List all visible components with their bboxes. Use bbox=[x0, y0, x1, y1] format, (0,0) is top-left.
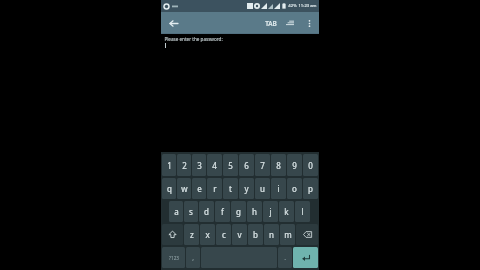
staticText: u bbox=[260, 183, 265, 194]
button[interactable]: j bbox=[263, 201, 278, 222]
button[interactable]: o bbox=[287, 178, 302, 199]
staticText: y bbox=[244, 183, 249, 194]
staticText: f bbox=[221, 206, 224, 217]
staticText: n bbox=[269, 229, 274, 240]
button[interactable]: 0 bbox=[303, 154, 318, 176]
button[interactable]: Back bbox=[165, 15, 181, 31]
staticText: , bbox=[192, 253, 194, 262]
button[interactable]: 8 bbox=[271, 154, 286, 176]
staticText: 11:23 am bbox=[298, 3, 317, 9]
staticText: x bbox=[205, 229, 210, 240]
staticText: a bbox=[174, 206, 179, 217]
button[interactable]: v bbox=[232, 224, 247, 245]
staticText: c bbox=[222, 229, 226, 240]
staticText: 42% bbox=[288, 3, 297, 9]
button[interactable]: Backspace bbox=[296, 224, 318, 245]
staticText: k bbox=[284, 206, 289, 217]
button[interactable]: k bbox=[279, 201, 294, 222]
button[interactable]: b bbox=[248, 224, 263, 245]
staticText: 6 bbox=[244, 160, 249, 171]
button[interactable]: More options bbox=[302, 16, 316, 30]
staticText: w bbox=[181, 183, 188, 194]
staticText: 3 bbox=[197, 160, 202, 171]
button[interactable]: q bbox=[162, 178, 176, 199]
button[interactable]: 6 bbox=[239, 154, 254, 176]
button[interactable]: 9 bbox=[287, 154, 302, 176]
button[interactable]: d bbox=[199, 201, 214, 222]
staticText: s bbox=[189, 206, 193, 217]
staticText: 1 bbox=[167, 160, 172, 171]
staticText: ?123 bbox=[169, 255, 179, 261]
button[interactable]: ?123 bbox=[162, 247, 185, 268]
staticText: q bbox=[167, 183, 172, 194]
staticText: g bbox=[236, 206, 241, 217]
button[interactable]: e bbox=[192, 178, 206, 199]
staticText: 5 bbox=[228, 160, 233, 171]
staticText: 8 bbox=[276, 160, 281, 171]
staticText: m bbox=[284, 229, 292, 240]
button[interactable]: TAB bbox=[264, 19, 278, 28]
button[interactable]: 3 bbox=[192, 154, 206, 176]
staticText: 9 bbox=[292, 160, 297, 171]
staticText: b bbox=[253, 229, 258, 240]
button[interactable]: Menu lines bbox=[283, 16, 297, 30]
staticText: d bbox=[204, 206, 209, 217]
button[interactable]: 7 bbox=[255, 154, 270, 176]
button[interactable]: 1 bbox=[162, 154, 176, 176]
button[interactable]: x bbox=[200, 224, 215, 245]
button[interactable]: 2 bbox=[177, 154, 191, 176]
button[interactable]: m bbox=[280, 224, 295, 245]
button[interactable]: u bbox=[255, 178, 270, 199]
button[interactable]: r bbox=[207, 178, 222, 199]
button[interactable]: i bbox=[271, 178, 286, 199]
button[interactable]: p bbox=[303, 178, 318, 199]
button[interactable]: f bbox=[215, 201, 230, 222]
button[interactable]: y bbox=[239, 178, 254, 199]
button[interactable]: z bbox=[184, 224, 199, 245]
staticText: Please enter the password: bbox=[164, 36, 223, 42]
staticText: r bbox=[213, 183, 217, 194]
button[interactable]: , bbox=[186, 247, 200, 268]
staticText: t bbox=[229, 183, 232, 194]
button[interactable]: s bbox=[184, 201, 198, 222]
button[interactable]: c bbox=[216, 224, 231, 245]
button[interactable]: w bbox=[177, 178, 191, 199]
staticText: 7 bbox=[260, 160, 265, 171]
button[interactable]: . bbox=[278, 247, 292, 268]
staticText: l bbox=[301, 206, 304, 217]
button[interactable]: Shift bbox=[162, 224, 183, 245]
button[interactable]: 4 bbox=[207, 154, 222, 176]
staticText: v bbox=[237, 229, 242, 240]
button[interactable]: t bbox=[223, 178, 238, 199]
staticText: z bbox=[190, 229, 194, 240]
button[interactable]: 5 bbox=[223, 154, 238, 176]
staticText: 2 bbox=[182, 160, 187, 171]
staticText: TAB bbox=[265, 19, 277, 28]
button[interactable]: l bbox=[295, 201, 310, 222]
staticText: p bbox=[308, 183, 313, 194]
button[interactable]: a bbox=[169, 201, 183, 222]
staticText: o bbox=[292, 183, 297, 194]
staticText: j bbox=[269, 206, 272, 217]
button[interactable]: h bbox=[247, 201, 262, 222]
button[interactable]: Enter bbox=[293, 247, 318, 268]
button[interactable]: n bbox=[264, 224, 279, 245]
button[interactable]: g bbox=[231, 201, 246, 222]
staticText: 4 bbox=[212, 160, 217, 171]
staticText: i bbox=[277, 183, 280, 194]
staticText: h bbox=[252, 206, 257, 217]
staticText: e bbox=[197, 183, 202, 194]
staticText: . bbox=[284, 253, 286, 262]
staticText: 0 bbox=[308, 160, 313, 171]
